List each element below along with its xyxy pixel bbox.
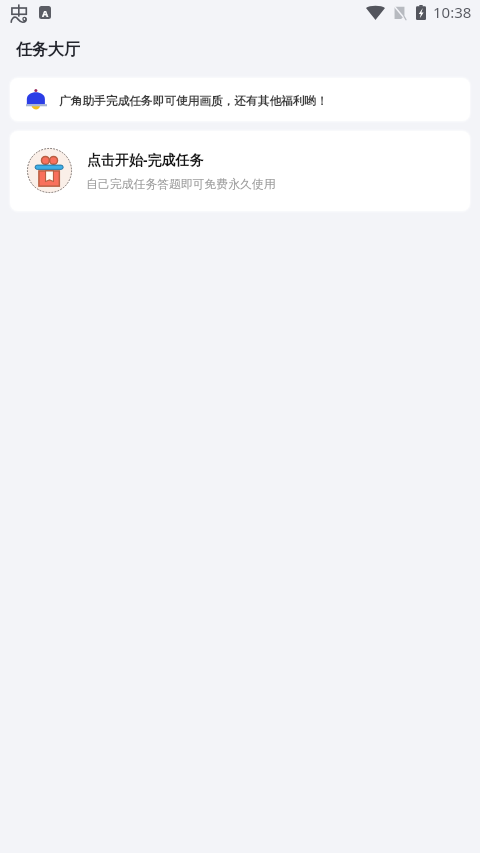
staticText: 自己完成任务答题即可免费永久使用: [86, 177, 276, 192]
staticText: 10:38: [433, 2, 472, 22]
staticText: 点击开始-完成任务: [87, 150, 204, 169]
other: App icon: [10, 4, 27, 23]
staticText: A: [42, 7, 49, 19]
staticText: 任务大厅: [16, 40, 80, 60]
button[interactable]: 点击开始-完成任务: [10, 131, 470, 211]
staticText: 广角助手完成任务即可使用画质，还有其他福利哟！: [59, 94, 328, 109]
button[interactable]: 广角助手完成任务即可使用画质，还有其他福利哟！: [10, 78, 470, 121]
